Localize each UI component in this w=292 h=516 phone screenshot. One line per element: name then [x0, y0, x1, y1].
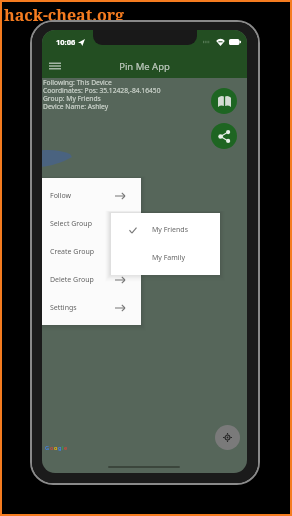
staticText: o	[54, 444, 58, 452]
staticText: Create Group	[50, 247, 95, 257]
staticText: My Family	[152, 253, 186, 263]
button[interactable]: Map type	[211, 88, 237, 114]
staticText: Follow	[50, 191, 72, 201]
button[interactable]: Create Group	[42, 238, 141, 266]
button[interactable]: Share	[211, 123, 237, 149]
button[interactable]: My Family	[111, 244, 220, 272]
staticText: hack-cheat.org	[4, 4, 125, 26]
staticText: l	[62, 444, 64, 452]
button[interactable]: Delete Group	[42, 266, 141, 294]
staticText: Select Group	[50, 219, 92, 229]
button[interactable]: My location	[215, 425, 240, 450]
staticText: Following: This Device Coordinates: Pos:…	[43, 78, 161, 111]
button[interactable]: My Friends	[111, 216, 220, 244]
button[interactable]: Settings	[42, 294, 141, 322]
staticText: g	[58, 444, 62, 452]
staticText: o	[50, 444, 54, 452]
staticText: Pin Me App	[68, 60, 221, 73]
staticText: G	[45, 444, 50, 452]
staticText: 10:06	[56, 37, 76, 47]
staticText: e	[64, 444, 68, 452]
staticText: Settings	[50, 303, 77, 313]
button[interactable]: Select Group	[42, 210, 141, 238]
button[interactable]: Open navigation menu	[42, 54, 68, 78]
staticText: My Friends	[152, 225, 189, 235]
staticText: Delete Group	[50, 275, 94, 285]
button[interactable]: Follow	[42, 182, 141, 210]
